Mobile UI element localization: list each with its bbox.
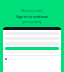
- staticText: Sign in to continue: [16, 14, 48, 19]
- staticText: your journey: [22, 20, 42, 24]
- button[interactable]: [5, 47, 59, 50]
- staticText: Welcome back: [21, 9, 43, 13]
